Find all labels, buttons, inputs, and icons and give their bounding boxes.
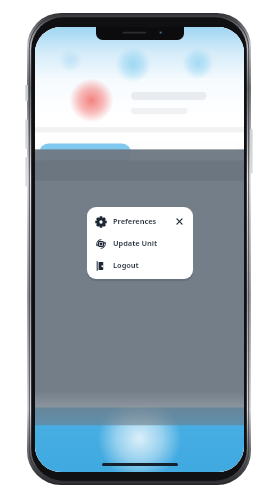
staticText: Update Unit [113, 238, 158, 248]
button[interactable]: Preferences [94, 210, 186, 232]
button[interactable]: Close menu [173, 215, 186, 228]
button[interactable]: Update Unit [94, 232, 186, 254]
staticText: Logout [113, 260, 139, 270]
button[interactable]: Logout [94, 254, 186, 276]
staticText: Preferences [113, 216, 157, 226]
